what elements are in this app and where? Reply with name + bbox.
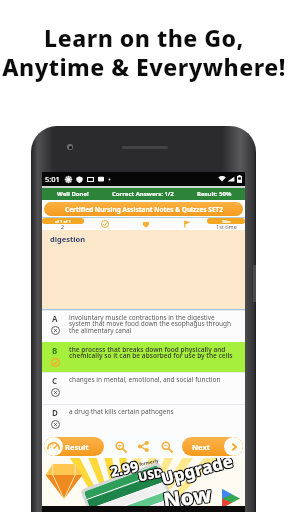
- button[interactable]: Mark correct: [84, 217, 125, 230]
- staticText: Correct Answers: 1/2: [112, 190, 174, 198]
- button[interactable]: Flag question: [166, 217, 207, 230]
- staticText: USD: [137, 465, 165, 485]
- staticText: Upgrade: [158, 458, 235, 491]
- button[interactable]: Zoom in: [113, 439, 128, 454]
- button[interactable]: of 1 of 1: [42, 217, 84, 230]
- staticText: B: [52, 345, 58, 356]
- staticText: USD: [137, 462, 165, 483]
- button[interactable]: Certified Nursing Assistant Notes & Quiz…: [44, 202, 243, 216]
- staticText: 30m: [222, 219, 231, 224]
- staticText: Now: [162, 479, 215, 512]
- button[interactable]: Zoom out: [159, 439, 174, 454]
- staticText: Learn on the Go,: [44, 22, 244, 53]
- staticText: USD: [136, 465, 164, 486]
- staticText: Upgrade: [157, 458, 234, 489]
- staticText: Upgrade: [158, 458, 235, 489]
- staticText: 2.99: [109, 458, 141, 480]
- button[interactable]: D: [42, 404, 245, 435]
- staticText: 2.99: [108, 458, 141, 481]
- staticText: Upgrade: [159, 458, 237, 490]
- staticText: C: [52, 375, 58, 386]
- staticText: 2.99: [109, 458, 142, 482]
- staticText: digestion: [50, 234, 86, 244]
- button[interactable]: 2.99: [42, 458, 245, 512]
- staticText: Now: [160, 479, 213, 512]
- staticText: Now: [160, 481, 213, 512]
- staticText: involuntary muscle contractions in the d…: [69, 313, 237, 335]
- staticText: 2.99: [109, 458, 142, 481]
- staticText: Now: [161, 479, 214, 512]
- staticText: a drug that kills certain pathogens: [69, 407, 174, 416]
- staticText: Upgrade: [159, 458, 236, 489]
- button[interactable]: Next: [182, 437, 243, 456]
- staticText: Now: [160, 480, 213, 512]
- staticText: Upgrade: [158, 458, 236, 491]
- staticText: Result: [65, 442, 89, 452]
- staticText: Upgrade: [157, 458, 235, 490]
- staticText: Upgrade: [159, 458, 237, 491]
- staticText: formerly: [139, 458, 159, 467]
- staticText: Now: [161, 480, 214, 512]
- staticText: USD: [137, 464, 164, 484]
- staticText: A: [52, 313, 58, 324]
- staticText: 2.99: [108, 458, 140, 480]
- staticText: of 1 of 1: [55, 219, 71, 224]
- staticText: USD: [138, 463, 165, 484]
- staticText: D: [52, 407, 58, 418]
- staticText: Result: 50%: [197, 190, 232, 198]
- staticText: USD: [136, 463, 164, 483]
- staticText: Now: [162, 481, 215, 512]
- button[interactable]: B: [42, 342, 245, 372]
- staticText: Well Done!: [57, 190, 89, 198]
- staticText: 2: [61, 223, 65, 230]
- button[interactable]: Share: [136, 439, 151, 454]
- staticText: changes in mental, emotional, and social…: [69, 375, 221, 384]
- staticText: 2.99: [108, 458, 140, 482]
- staticText: 2.99: [108, 458, 141, 482]
- staticText: Now: [162, 480, 215, 512]
- staticText: USD: [136, 464, 163, 485]
- staticText: Next: [192, 442, 211, 452]
- staticText: USD: [138, 464, 166, 485]
- staticText: Now: [161, 481, 214, 512]
- button[interactable]: Favourite: [125, 217, 166, 230]
- staticText: 2.99: [107, 458, 140, 481]
- staticText: 5:01: [45, 174, 60, 184]
- button[interactable]: A: [42, 310, 245, 342]
- staticText: Upgrade: [158, 458, 236, 490]
- button[interactable]: 30m: [207, 217, 245, 230]
- staticText: Certified Nursing Assistant Notes & Quiz…: [65, 205, 223, 214]
- staticText: 2.99: [107, 458, 139, 480]
- staticText: 1st time: [216, 223, 237, 230]
- button[interactable]: C: [42, 372, 245, 404]
- staticText: the process that breaks down food physic…: [69, 345, 237, 360]
- staticText: USD: [135, 463, 163, 484]
- button[interactable]: Result: [44, 437, 104, 456]
- staticText: Anytime & Everywhere!: [2, 51, 286, 82]
